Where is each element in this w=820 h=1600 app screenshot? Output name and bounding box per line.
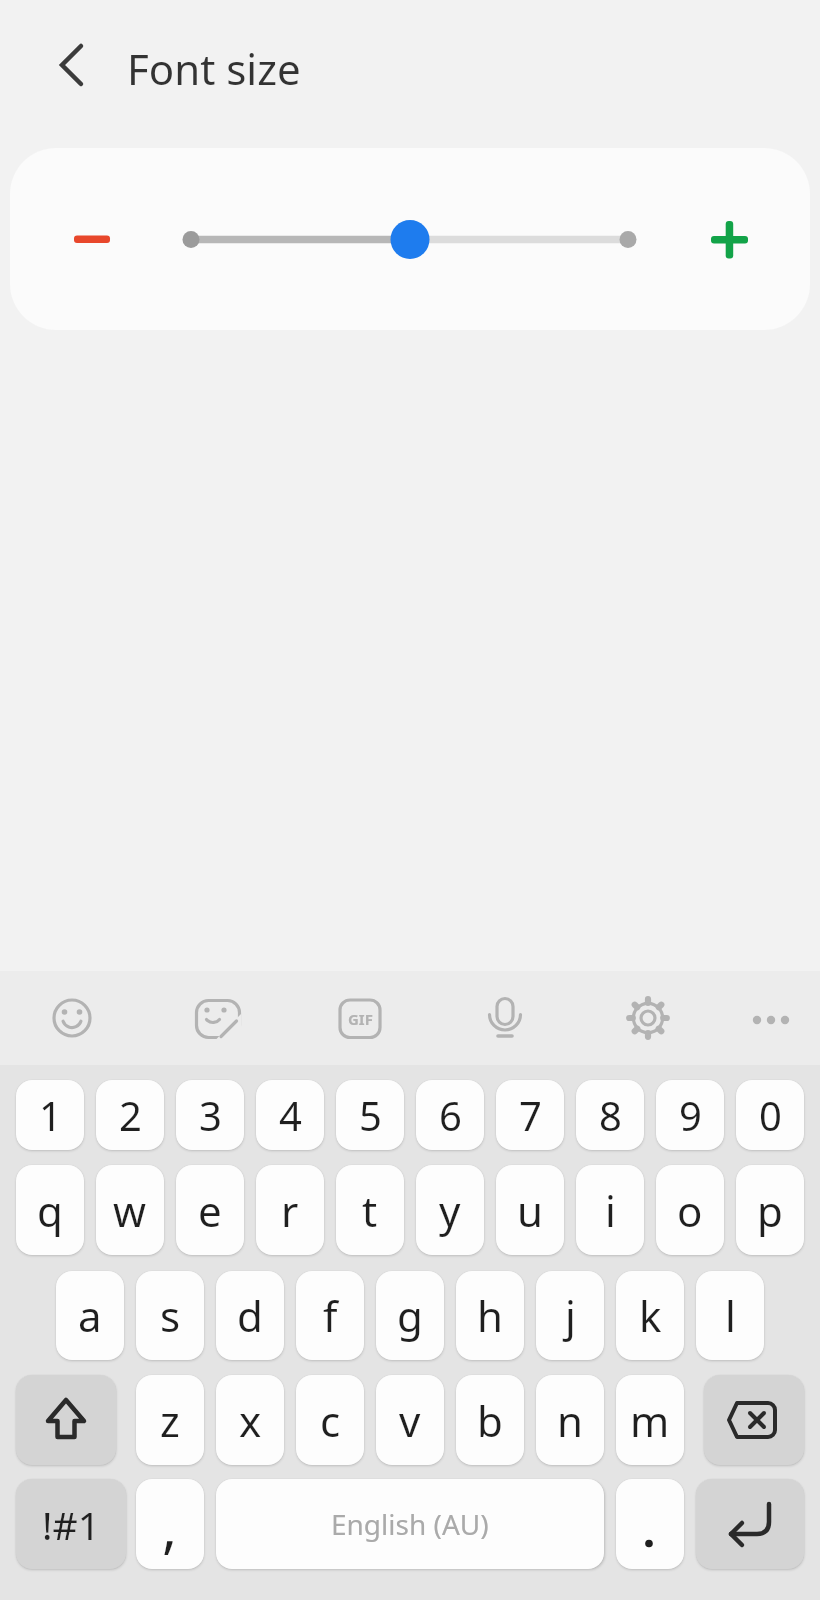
button[interactable]: o	[656, 1165, 724, 1255]
button[interactable]: s	[136, 1271, 204, 1360]
button[interactable]	[618, 988, 678, 1048]
staticText: GIF	[348, 1009, 373, 1029]
button[interactable]: y	[416, 1165, 484, 1255]
staticText: 4	[279, 1088, 302, 1142]
staticText: 0	[759, 1088, 782, 1142]
staticText: k	[639, 1287, 662, 1344]
button[interactable]: ,	[136, 1479, 204, 1569]
staticText: e	[198, 1182, 222, 1239]
button[interactable]	[616, 1479, 684, 1569]
staticText: 1	[39, 1088, 62, 1142]
button[interactable]: w	[96, 1165, 164, 1255]
staticText: English (AU)	[331, 1505, 489, 1543]
staticText: m	[630, 1392, 670, 1449]
staticText: c	[320, 1392, 341, 1449]
button[interactable]: g	[376, 1271, 444, 1360]
staticText: l	[725, 1287, 736, 1344]
button[interactable]: 3	[176, 1080, 244, 1150]
staticText: 8	[599, 1088, 622, 1142]
button[interactable]: 4	[256, 1080, 324, 1150]
button[interactable]: p	[736, 1165, 804, 1255]
button[interactable]: t	[336, 1165, 404, 1255]
button[interactable]: 9	[656, 1080, 724, 1150]
button[interactable]: v	[376, 1375, 444, 1465]
staticText: ,	[162, 1488, 178, 1564]
staticText: o	[677, 1182, 703, 1239]
button[interactable]: 6	[416, 1080, 484, 1150]
button[interactable]: u	[496, 1165, 564, 1255]
button[interactable]: z	[136, 1375, 204, 1465]
button[interactable]: r	[256, 1165, 324, 1255]
button[interactable]	[181, 209, 639, 269]
button[interactable]	[696, 1479, 804, 1569]
staticText: y	[439, 1182, 461, 1239]
staticText: f	[323, 1287, 338, 1344]
staticText: n	[557, 1392, 583, 1449]
staticText: r	[281, 1182, 299, 1239]
staticText: 9	[679, 1088, 702, 1142]
button[interactable]: 2	[96, 1080, 164, 1150]
button[interactable]: !#1	[16, 1479, 126, 1569]
button[interactable]: f	[296, 1271, 364, 1360]
button[interactable]: m	[616, 1375, 684, 1465]
button[interactable]	[740, 988, 800, 1048]
button[interactable]: n	[536, 1375, 604, 1465]
button[interactable]	[40, 33, 102, 95]
button[interactable]: 0	[736, 1080, 804, 1150]
staticText: d	[237, 1287, 263, 1344]
button[interactable]: a	[56, 1271, 124, 1360]
button[interactable]	[42, 988, 102, 1048]
staticText: Font size	[127, 40, 301, 97]
button[interactable]	[699, 209, 759, 269]
button[interactable]: i	[576, 1165, 644, 1255]
button[interactable]	[704, 1375, 804, 1465]
staticText: v	[399, 1392, 421, 1449]
staticText: 2	[119, 1088, 142, 1142]
staticText: 3	[199, 1088, 222, 1142]
button[interactable]: d	[216, 1271, 284, 1360]
staticText: x	[239, 1392, 262, 1449]
staticText: b	[477, 1392, 503, 1449]
staticText: q	[37, 1182, 63, 1239]
staticText: !#1	[42, 1498, 100, 1551]
button[interactable]: 5	[336, 1080, 404, 1150]
button[interactable]: q	[16, 1165, 84, 1255]
button[interactable]: l	[696, 1271, 764, 1360]
button[interactable]	[330, 988, 390, 1048]
staticText: t	[362, 1182, 378, 1239]
button[interactable]	[186, 988, 246, 1048]
staticText: w	[113, 1182, 147, 1239]
button[interactable]: x	[216, 1375, 284, 1465]
button[interactable]: j	[536, 1271, 604, 1360]
staticText: s	[160, 1287, 181, 1344]
button[interactable]	[475, 988, 535, 1048]
staticText: g	[397, 1287, 423, 1344]
staticText: i	[605, 1182, 616, 1239]
button[interactable]: h	[456, 1271, 524, 1360]
staticText: z	[160, 1392, 180, 1449]
button[interactable]	[16, 1375, 116, 1465]
button[interactable]: e	[176, 1165, 244, 1255]
button[interactable]: English (AU)	[216, 1479, 604, 1569]
button[interactable]: 1	[16, 1080, 84, 1150]
staticText: 7	[519, 1088, 542, 1142]
button[interactable]: b	[456, 1375, 524, 1465]
button[interactable]	[62, 209, 122, 269]
staticText: h	[477, 1287, 503, 1344]
staticText: 5	[359, 1088, 382, 1142]
staticText: 6	[439, 1088, 462, 1142]
button[interactable]: 7	[496, 1080, 564, 1150]
button[interactable]: 8	[576, 1080, 644, 1150]
staticText: a	[78, 1287, 102, 1344]
button[interactable]: k	[616, 1271, 684, 1360]
staticText: j	[565, 1287, 576, 1344]
button[interactable]: c	[296, 1375, 364, 1465]
staticText: u	[517, 1182, 543, 1239]
staticText: p	[757, 1182, 783, 1239]
